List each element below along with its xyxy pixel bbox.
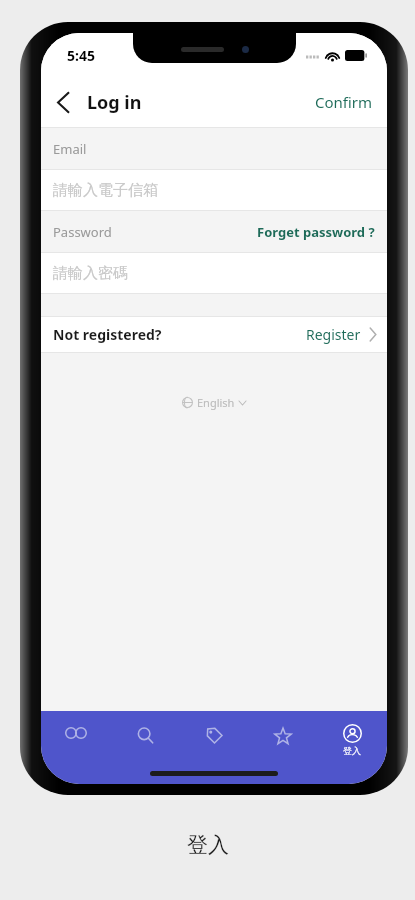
button[interactable]: 請輸入密碼 [41,253,387,293]
staticText: 登入 [343,745,361,756]
button[interactable]: Account [325,722,379,766]
staticText: Forget password ? [257,223,375,241]
button[interactable]: 請輸入電子信箱 [41,170,387,210]
button[interactable]: Search [118,722,172,766]
staticText: Register [306,325,361,344]
staticText: English [197,395,235,410]
staticText: 5:45 [67,46,95,65]
staticText: 登入 [187,832,229,858]
staticText: Not registered? [53,325,162,344]
button[interactable]: English [172,389,256,416]
button[interactable]: Forget password ? [245,215,387,249]
button[interactable]: Not registered? [41,317,387,352]
staticText: Log in [87,90,142,115]
button[interactable]: Tags [187,722,241,766]
button[interactable]: Favourites [256,722,310,766]
button[interactable]: Back [41,85,80,120]
staticText: Email [53,140,87,158]
staticText: Password [53,223,112,241]
button[interactable]: Confirm [301,82,387,122]
staticText: 請輸入密碼 [53,264,128,283]
button[interactable]: Browse [49,722,103,766]
staticText: Confirm [315,92,373,112]
staticText: 請輸入電子信箱 [53,181,158,200]
